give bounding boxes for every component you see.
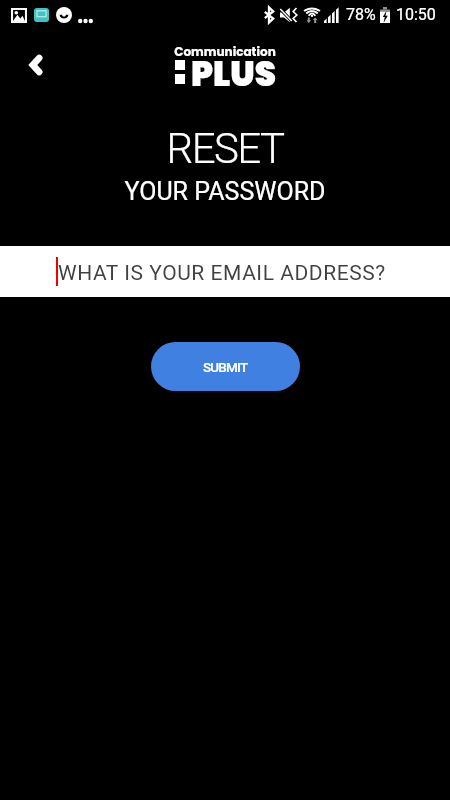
button[interactable]: Back [17, 47, 53, 83]
staticText: YOUR PASSWORD [0, 177, 450, 206]
button[interactable]: SUBMIT [151, 342, 300, 391]
staticText: PLUS [191, 50, 276, 98]
staticText: 78% [346, 5, 376, 24]
button[interactable]: WHAT IS YOUR EMAIL ADDRESS? [0, 246, 450, 297]
staticText: SUBMIT [203, 359, 248, 375]
staticText: RESET [0, 124, 450, 173]
staticText: 10:50 [396, 5, 436, 24]
staticText: WHAT IS YOUR EMAIL ADDRESS? [58, 261, 386, 286]
staticText: Communication [0, 43, 450, 60]
